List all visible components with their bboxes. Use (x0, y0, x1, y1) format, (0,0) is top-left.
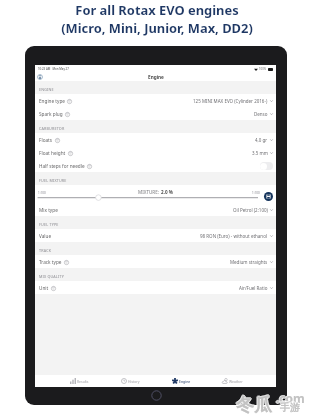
staticText: FUEL MIXTURE (39, 178, 67, 183)
staticText: Engine (179, 379, 191, 384)
button[interactable]: Value (35, 229, 276, 242)
staticText: Results (77, 379, 89, 384)
button[interactable]: Save mixture (264, 192, 273, 201)
staticText: 1:100 (38, 191, 46, 195)
staticText: Weather (229, 379, 243, 384)
staticText: .com (277, 390, 306, 406)
staticText: TRACK (39, 248, 52, 253)
staticText: 手游 (279, 401, 299, 414)
staticText: Mix type (39, 207, 58, 213)
staticText: MIXTURE: (138, 189, 161, 195)
button[interactable]: Mix type (35, 203, 276, 216)
staticText: 冬瓜 (235, 394, 271, 417)
staticText: 2.0 % (161, 189, 173, 195)
button[interactable]: Results (53, 375, 105, 387)
staticText: .com (275, 390, 304, 406)
staticText: .com (276, 391, 305, 407)
staticText: 手游 (280, 402, 300, 415)
staticText: 冬瓜 (236, 394, 272, 417)
staticText: Float height (39, 150, 66, 156)
staticText: Track type (39, 259, 62, 265)
staticText: MIX QUALITY (39, 274, 64, 279)
staticText: 10:23 AM Mon May 27 (38, 67, 69, 71)
button[interactable]: Unit (35, 281, 276, 294)
button[interactable]: Spark plug (35, 107, 276, 120)
staticText: Floats (39, 137, 53, 143)
button[interactable]: Info (37, 74, 43, 80)
staticText: 125 MINI MAX EVO (Cylinder 2016-) (193, 98, 268, 104)
staticText: For all Rotax EVO engines (75, 1, 239, 19)
staticText: 1:100 (252, 191, 260, 195)
staticText: 手游 (281, 401, 301, 414)
staticText: (Micro, Mini, Junior, Max, DD2) (61, 19, 253, 37)
button[interactable]: History (105, 375, 156, 387)
staticText: .com (276, 389, 305, 405)
staticText: Value (39, 233, 52, 239)
staticText: 4,0 gr (255, 137, 268, 143)
button[interactable]: Half steps for needle (35, 159, 276, 172)
staticText: ENGINE (39, 87, 54, 92)
button[interactable]: Track type (35, 255, 276, 268)
staticText: Air/Fuel Ratio (239, 285, 268, 291)
staticText: 冬瓜 (237, 394, 273, 417)
button[interactable]: Float height (35, 146, 276, 159)
staticText: 冬瓜 (236, 393, 272, 416)
staticText: Medium straights (230, 259, 268, 265)
button[interactable]: Engine (156, 375, 207, 387)
staticText: Spark plug (39, 111, 63, 117)
staticText: 手游 (280, 401, 300, 414)
staticText: 98 RON (Euro) - without ethanol (200, 233, 268, 239)
staticText: Engine (148, 74, 164, 80)
staticText: Unit (39, 285, 49, 291)
staticText: 3.5 mm (252, 150, 268, 156)
staticText: 冬瓜 (236, 395, 272, 418)
staticText: FUEL TYPE (39, 222, 59, 227)
staticText: Half steps for needle (39, 163, 85, 169)
button[interactable]: Engine type (35, 94, 276, 107)
staticText: .com (276, 390, 305, 406)
button[interactable]: Floats (35, 133, 276, 146)
staticText: CARBURETOR (39, 126, 65, 131)
staticText: 手游 (280, 400, 300, 413)
staticText: Oil Petrol (2:100) (233, 207, 268, 213)
staticText: Denso (254, 111, 268, 117)
staticText: History (128, 379, 140, 384)
button[interactable]: Half steps for needle toggle (260, 162, 273, 170)
staticText: 100% (259, 67, 267, 71)
staticText: Engine type (39, 98, 65, 104)
button[interactable]: Weather (207, 375, 258, 387)
